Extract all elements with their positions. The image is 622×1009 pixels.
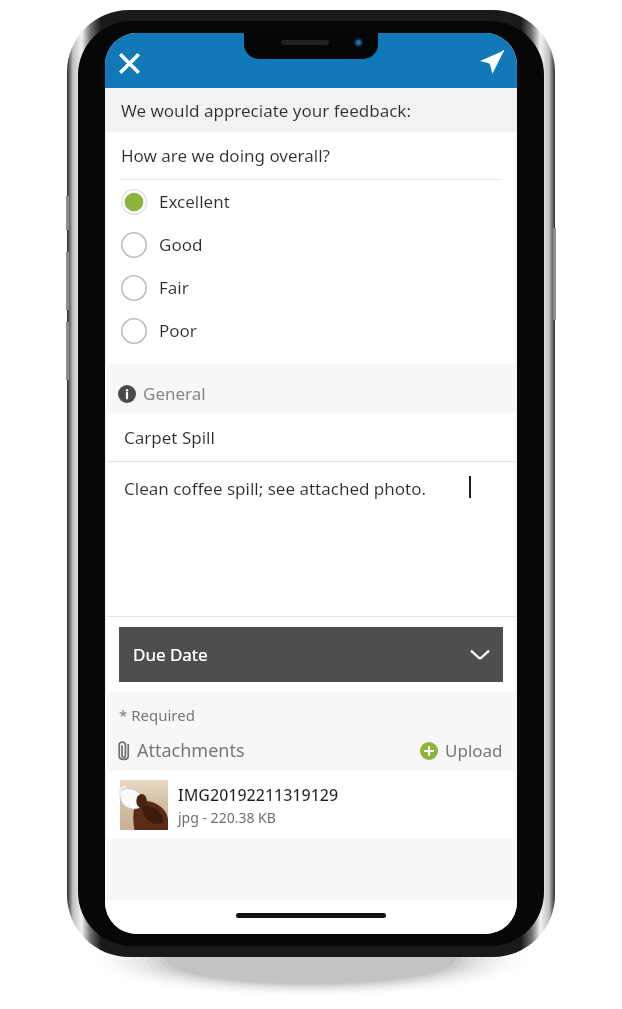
- button[interactable]: Due Date: [119, 627, 503, 682]
- staticText: jpg - 220.38 KB: [178, 808, 276, 827]
- staticText: * Required: [119, 705, 195, 725]
- staticText: Excellent: [159, 190, 230, 213]
- button[interactable]: Send: [470, 40, 514, 84]
- button[interactable]: Fair: [107, 266, 515, 309]
- button[interactable]: Poor: [107, 309, 515, 352]
- button[interactable]: Upload: [420, 739, 503, 762]
- staticText: How are we doing overall?: [121, 144, 330, 167]
- button[interactable]: Good: [107, 223, 515, 266]
- button[interactable]: Carpet Spill: [107, 413, 515, 461]
- button[interactable]: Excellent: [107, 180, 515, 223]
- staticText: We would appreciate your feedback:: [121, 99, 412, 122]
- staticText: IMG20192211319129: [178, 784, 339, 806]
- staticText: Poor: [159, 319, 197, 342]
- staticText: Clean coffee spill; see attached photo.: [124, 477, 427, 500]
- staticText: Due Date: [133, 643, 208, 666]
- button[interactable]: IMG20192211319129: [107, 771, 515, 839]
- staticText: Fair: [159, 276, 189, 299]
- button[interactable]: Clean coffee spill; see attached photo.: [107, 462, 515, 616]
- staticText: Carpet Spill: [124, 426, 215, 449]
- button[interactable]: Close: [107, 41, 151, 85]
- staticText: Upload: [445, 739, 503, 762]
- staticText: Attachments: [137, 738, 245, 763]
- staticText: General: [143, 382, 206, 405]
- staticText: Good: [159, 233, 203, 256]
